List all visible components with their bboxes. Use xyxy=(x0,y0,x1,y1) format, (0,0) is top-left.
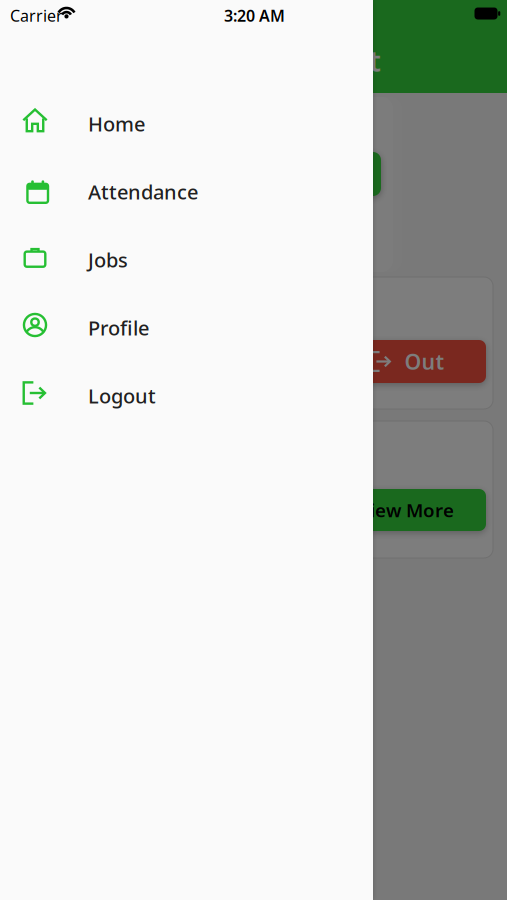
staticText: Jobs xyxy=(88,246,128,273)
button[interactable]: In xyxy=(231,152,381,196)
button[interactable]: Out xyxy=(328,340,486,383)
staticText: Out xyxy=(404,347,444,376)
button[interactable]: Jobs xyxy=(0,225,373,289)
button[interactable]: Logout xyxy=(0,361,373,425)
staticText: Attendance xyxy=(88,178,198,205)
staticText: Home xyxy=(88,110,145,137)
button[interactable]: Home xyxy=(0,89,373,153)
staticText: Profile xyxy=(88,314,149,341)
staticText: Logout xyxy=(88,382,156,409)
staticText: Carrier xyxy=(10,5,63,26)
button[interactable]: Profile xyxy=(0,293,373,357)
staticText: 3:20 AM xyxy=(224,5,285,26)
staticText: View More xyxy=(358,498,454,522)
staticText: Daily Attendance Report xyxy=(32,41,381,80)
button[interactable]: Attendance xyxy=(0,157,373,221)
button[interactable]: View More xyxy=(326,489,486,531)
